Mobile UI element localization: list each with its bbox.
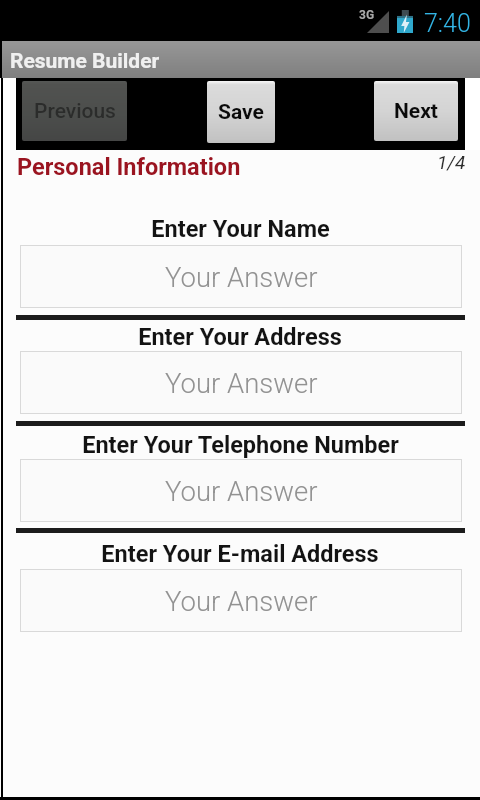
- button[interactable]: Next: [374, 81, 458, 141]
- staticText: 7:40: [424, 9, 471, 38]
- staticText: Enter Your Address: [138, 323, 342, 351]
- staticText: Next: [394, 99, 438, 124]
- staticText: Your Answer: [165, 261, 318, 293]
- staticText: Your Answer: [165, 367, 318, 399]
- button[interactable]: Your Answer: [20, 245, 462, 308]
- staticText: Resume Builder: [10, 49, 160, 74]
- staticText: Enter Your Telephone Number: [82, 431, 399, 459]
- button[interactable]: Your Answer: [20, 459, 462, 522]
- button[interactable]: Save: [207, 81, 275, 143]
- staticText: Enter Your Name: [151, 215, 330, 243]
- button[interactable]: Your Answer: [20, 569, 462, 632]
- button[interactable]: Previous: [22, 81, 127, 141]
- staticText: Save: [218, 100, 264, 125]
- staticText: Previous: [34, 99, 116, 124]
- staticText: 3G: [359, 8, 375, 22]
- staticText: Personal Information: [17, 153, 241, 181]
- other: Battery charging: [397, 10, 413, 33]
- staticText: 1/4: [437, 151, 466, 173]
- staticText: Your Answer: [165, 475, 318, 507]
- button[interactable]: Your Answer: [20, 351, 462, 414]
- staticText: Your Answer: [165, 585, 318, 617]
- staticText: Enter Your E-mail Address: [101, 540, 379, 568]
